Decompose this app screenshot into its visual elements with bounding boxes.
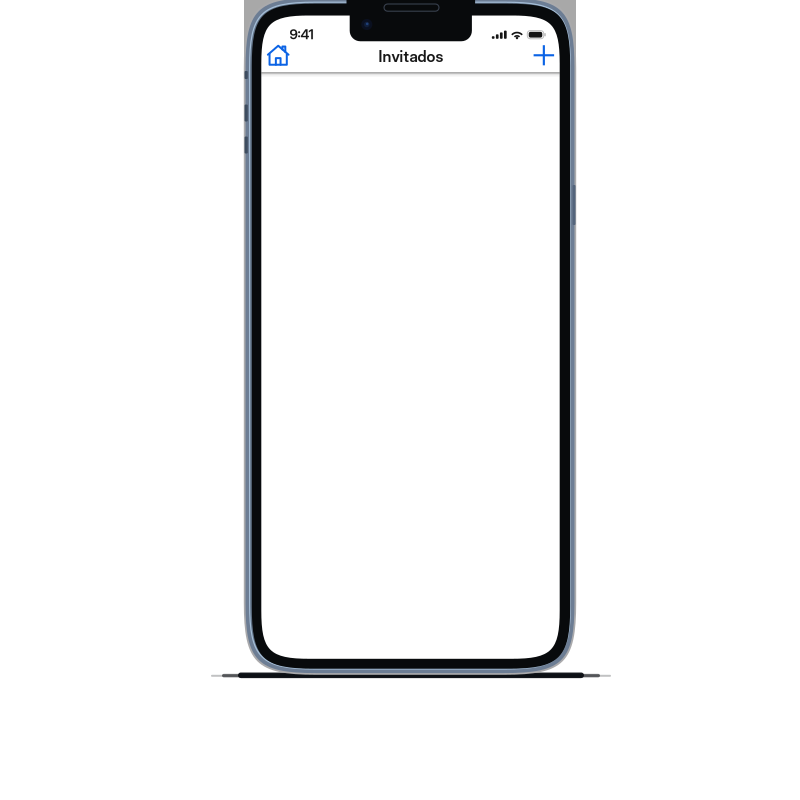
staticText: 9:41: [290, 26, 314, 43]
button[interactable]: Add: [524, 38, 564, 72]
staticText: Invitados: [378, 47, 443, 66]
button[interactable]: Home: [258, 38, 298, 72]
